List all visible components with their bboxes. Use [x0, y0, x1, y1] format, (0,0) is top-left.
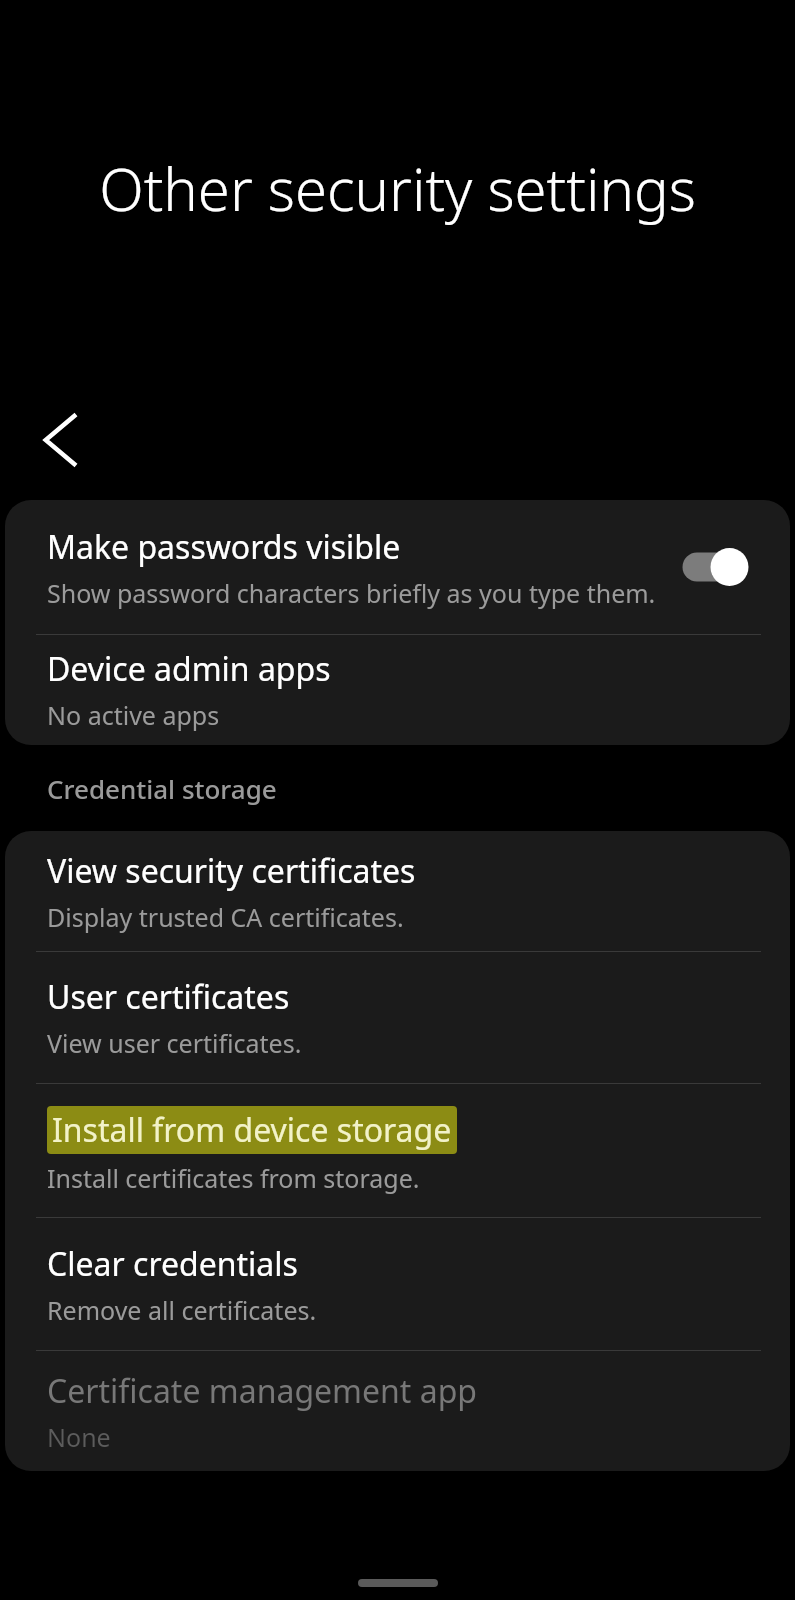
staticText: None — [47, 1420, 111, 1454]
button[interactable]: User certificates — [5, 952, 790, 1083]
staticText: Install from device storage — [52, 1108, 452, 1152]
staticText: Install certificates from storage. — [47, 1161, 420, 1195]
staticText: Clear credentials — [47, 1242, 298, 1286]
button[interactable]: Device admin apps — [5, 635, 790, 743]
button[interactable]: Back — [24, 404, 96, 476]
staticText: Show password characters briefly as you … — [47, 576, 656, 610]
staticText: Credential storage — [47, 771, 277, 806]
button[interactable]: Make passwords visible — [5, 500, 790, 634]
staticText: View user certificates. — [47, 1026, 302, 1060]
staticText: Device admin apps — [47, 647, 331, 691]
staticText: User certificates — [47, 975, 290, 1019]
staticText: Remove all certificates. — [47, 1293, 317, 1327]
button[interactable]: Install from device storage — [5, 1084, 790, 1217]
button[interactable]: Clear credentials — [5, 1218, 790, 1350]
staticText: Display trusted CA certificates. — [47, 900, 404, 934]
staticText: No active apps — [47, 698, 220, 732]
staticText: View security certificates — [47, 849, 416, 893]
button[interactable]: Make passwords visible toggle — [680, 545, 750, 589]
staticText: Other security settings — [40, 149, 755, 228]
staticText: Make passwords visible — [47, 525, 401, 569]
button[interactable]: View security certificates — [5, 831, 790, 951]
staticText: Certificate management app — [47, 1369, 478, 1413]
button[interactable]: Certificate management app — [5, 1351, 790, 1471]
